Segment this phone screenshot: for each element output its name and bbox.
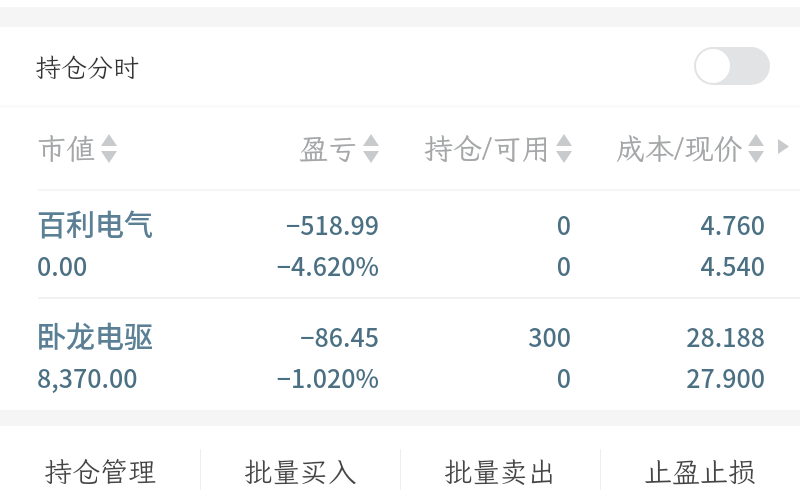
button[interactable]: 盈亏 — [299, 134, 379, 172]
staticText: 卧龙电驱 — [37, 314, 154, 356]
button[interactable]: 百利电气 — [0, 185, 800, 297]
staticText: 持仓分时 — [35, 50, 140, 84]
staticText: 8,370.00 — [37, 359, 138, 395]
button[interactable]: Toggle intraday chart — [694, 47, 770, 85]
button[interactable]: 止盈止损 — [601, 426, 800, 500]
staticText: 盈亏 — [299, 129, 358, 167]
staticText: 28.188 — [686, 318, 765, 354]
staticText: −518.99 — [286, 206, 379, 242]
staticText: 批量买入 — [244, 453, 357, 490]
staticText: 成本/现价 — [616, 129, 743, 167]
staticText: 止盈止损 — [644, 453, 757, 490]
button[interactable]: 持仓/可用 — [424, 134, 572, 172]
button[interactable]: 市值 — [37, 134, 117, 172]
button[interactable]: 批量卖出 — [401, 426, 600, 500]
staticText: −1.020% — [276, 359, 379, 395]
staticText: 27.900 — [686, 359, 765, 395]
staticText: 4.540 — [700, 247, 765, 283]
staticText: 百利电气 — [37, 202, 154, 244]
staticText: 持仓管理 — [44, 453, 157, 490]
staticText: −4.620% — [276, 247, 379, 283]
staticText: 批量卖出 — [444, 453, 557, 490]
button[interactable]: 成本/现价 — [616, 134, 764, 172]
staticText: 0 — [556, 206, 571, 242]
button[interactable]: 持仓分时 — [0, 30, 800, 104]
staticText: 持仓/可用 — [424, 129, 551, 167]
staticText: 市值 — [37, 129, 96, 167]
staticText: 0 — [556, 359, 571, 395]
staticText: 4.760 — [700, 206, 765, 242]
button[interactable]: 持仓管理 — [0, 426, 200, 500]
staticText: 0.00 — [37, 247, 88, 283]
staticText: 300 — [528, 318, 571, 354]
button[interactable]: 卧龙电驱 — [0, 297, 800, 409]
staticText: −86.45 — [300, 318, 379, 354]
staticText: 0 — [556, 247, 571, 283]
button[interactable]: More columns — [772, 131, 794, 161]
button[interactable]: 批量买入 — [201, 426, 400, 500]
